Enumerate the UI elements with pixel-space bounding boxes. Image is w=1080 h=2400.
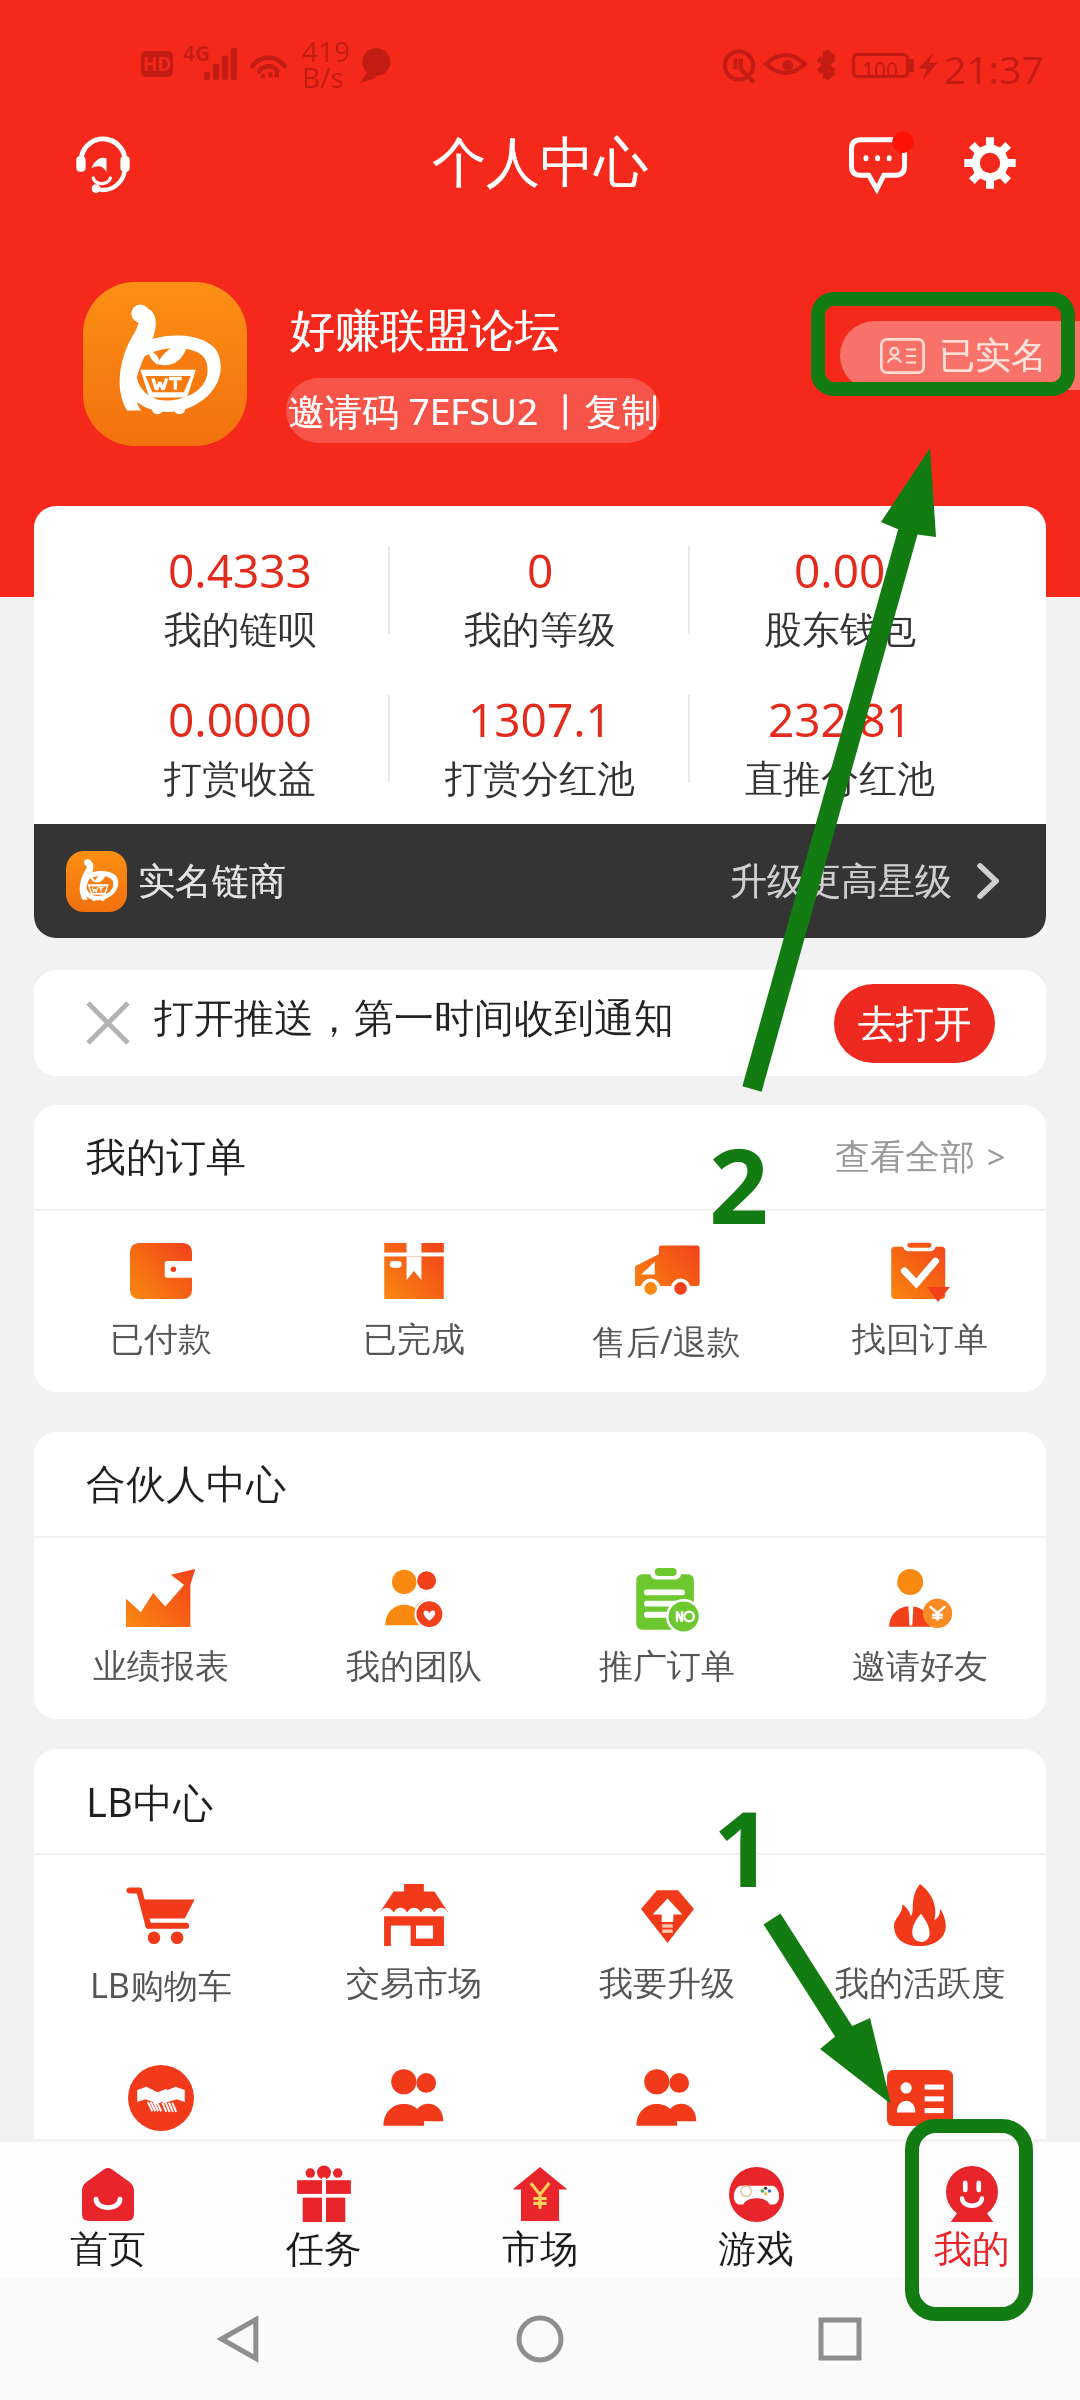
button[interactable]: 去打开 bbox=[834, 984, 995, 1063]
staticText: 232.81 bbox=[768, 688, 912, 751]
staticText: 售后/退款 bbox=[592, 1318, 741, 1364]
button[interactable]: 邀请好友 bbox=[793, 1538, 1046, 1719]
button[interactable]: 已完成 bbox=[287, 1211, 540, 1392]
button[interactable]: ID card bbox=[793, 2045, 1046, 2139]
staticText: 打开推送，第一时间收到通知 bbox=[154, 993, 674, 1043]
staticText: 我的活跃度 bbox=[835, 1962, 1005, 2005]
staticText: 合伙人中心 bbox=[86, 1459, 286, 1509]
staticText: 4G bbox=[183, 39, 211, 68]
button[interactable]: 0.00 bbox=[690, 506, 990, 674]
button[interactable]: Messages bbox=[830, 115, 926, 211]
button[interactable]: 我要升级 bbox=[540, 1855, 793, 2045]
staticText: LB中心 bbox=[86, 1774, 213, 1829]
button[interactable]: 我的团队 bbox=[287, 1538, 540, 1719]
button[interactable]: 查看全部 bbox=[835, 1135, 1046, 1179]
staticText: B/s bbox=[302, 58, 345, 96]
button[interactable]: LB购物车 bbox=[34, 1855, 287, 2045]
button[interactable]: 实名链商 bbox=[34, 824, 1046, 938]
button[interactable]: 售后/退款 bbox=[540, 1211, 793, 1392]
staticText: 个人中心 bbox=[432, 129, 648, 197]
staticText: 游戏 bbox=[718, 2225, 794, 2273]
button[interactable]: 找回订单 bbox=[793, 1211, 1046, 1392]
button[interactable]: 游戏 bbox=[648, 2142, 864, 2278]
staticText: 我要升级 bbox=[599, 1962, 735, 2005]
button[interactable]: Back bbox=[190, 2289, 290, 2389]
staticText: 任务 bbox=[286, 2225, 362, 2273]
button[interactable]: 首页 bbox=[0, 2142, 216, 2278]
staticText: 业绩报表 bbox=[93, 1645, 229, 1688]
button[interactable]: 推广订单 bbox=[540, 1538, 793, 1719]
staticText: 我的订单 bbox=[86, 1132, 246, 1182]
button[interactable]: Home bbox=[490, 2289, 590, 2389]
button[interactable]: Settings bbox=[942, 115, 1038, 211]
button[interactable]: 邀请码 7EFSU2 丨复制 bbox=[286, 378, 660, 443]
staticText: 邀请好友 bbox=[852, 1645, 988, 1688]
staticText: 实名链商 bbox=[138, 858, 286, 905]
button[interactable]: 交易市场 bbox=[287, 1855, 540, 2045]
button[interactable]: 市场 bbox=[432, 2142, 648, 2278]
button[interactable]: 1307.1 bbox=[390, 674, 690, 803]
button[interactable]: Close bbox=[79, 994, 137, 1052]
button[interactable]: 业绩报表 bbox=[34, 1538, 287, 1719]
staticText: 我的 bbox=[934, 2225, 1010, 2273]
staticText: 市场 bbox=[502, 2225, 578, 2273]
button[interactable]: 我的活跃度 bbox=[793, 1855, 1046, 2045]
staticText: 去打开 bbox=[858, 1000, 972, 1048]
staticText: 2 bbox=[709, 1113, 769, 1255]
button[interactable]: Recents bbox=[790, 2289, 890, 2389]
staticText: 1 bbox=[713, 1776, 773, 1918]
staticText: 我的等级 bbox=[464, 606, 616, 654]
staticText: LB购物车 bbox=[90, 1962, 232, 2008]
staticText: 邀请码 7EFSU2 丨复制 bbox=[288, 385, 659, 436]
button[interactable]: Handshake bbox=[34, 2045, 287, 2139]
staticText: 我的团队 bbox=[346, 1645, 482, 1688]
button[interactable]: 0.0000 bbox=[90, 674, 390, 803]
staticText: 好赚联盟论坛 bbox=[290, 303, 560, 360]
staticText: > bbox=[987, 1135, 1006, 1179]
button[interactable]: Customer service bbox=[57, 117, 149, 209]
staticText: 0.0000 bbox=[168, 688, 312, 751]
staticText: 推广订单 bbox=[599, 1645, 735, 1688]
button[interactable]: 已实名 bbox=[840, 321, 1080, 390]
staticText: 升级更高星级 bbox=[730, 858, 952, 905]
staticText: 419 bbox=[302, 32, 351, 70]
staticText: 查看全部 bbox=[835, 1135, 975, 1179]
staticText: 打赏分红池 bbox=[445, 755, 635, 803]
staticText: 我的链呗 bbox=[164, 606, 316, 654]
staticText: 100 bbox=[862, 56, 899, 75]
button[interactable]: Members bbox=[287, 2045, 540, 2139]
button[interactable]: 已付款 bbox=[34, 1211, 287, 1392]
staticText: 0.4333 bbox=[168, 539, 312, 602]
staticText: 交易市场 bbox=[346, 1962, 482, 2005]
button[interactable]: 我的 bbox=[864, 2142, 1080, 2278]
staticText: 21:37 bbox=[944, 42, 1044, 95]
staticText: 股东钱包 bbox=[764, 606, 916, 654]
button[interactable]: Members 2 bbox=[540, 2045, 793, 2139]
staticText: 0 bbox=[527, 539, 554, 602]
staticText: 找回订单 bbox=[852, 1318, 988, 1361]
staticText: HD bbox=[143, 51, 172, 77]
staticText: 已实名 bbox=[939, 333, 1047, 378]
staticText: 1307.1 bbox=[468, 688, 612, 751]
button[interactable]: 0 bbox=[390, 506, 690, 674]
staticText: 直推分红池 bbox=[745, 755, 935, 803]
staticText: 首页 bbox=[70, 2225, 146, 2273]
staticText: 0.00 bbox=[794, 539, 886, 602]
button[interactable]: 232.81 bbox=[690, 674, 990, 803]
button[interactable]: 0.4333 bbox=[90, 506, 390, 674]
staticText: 已付款 bbox=[110, 1318, 212, 1361]
staticText: 已完成 bbox=[363, 1318, 465, 1361]
button[interactable]: Avatar bbox=[83, 282, 247, 446]
staticText: 打赏收益 bbox=[164, 755, 316, 803]
button[interactable]: 任务 bbox=[216, 2142, 432, 2278]
